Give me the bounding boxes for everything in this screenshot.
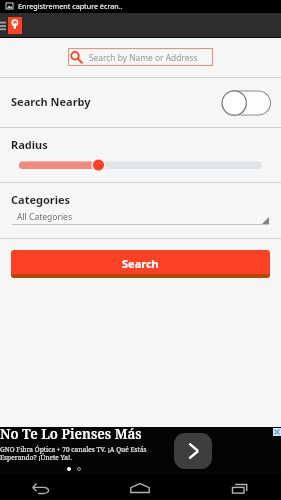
button[interactable]: Close advertisement — [273, 428, 281, 436]
staticText: Esperando? ¡Únete Ya!. — [0, 453, 72, 462]
staticText: Search — [122, 256, 159, 271]
staticText: Search by Name or Address — [89, 52, 198, 63]
staticText: GNO Fibra Óptica + 70 canales TV. ¡A Qué… — [0, 445, 147, 454]
staticText: No Te Lo Pienses Más — [0, 425, 142, 443]
button[interactable]: Back — [26, 477, 56, 499]
button[interactable]: All Categories — [12, 209, 269, 225]
button[interactable]: Search — [11, 250, 270, 278]
staticText: Categories — [11, 192, 71, 207]
button[interactable]: Search Nearby toggle — [220, 88, 274, 118]
staticText: Search Nearby — [11, 94, 91, 109]
button[interactable]: Home — [125, 477, 155, 499]
button[interactable]: App logo — [8, 17, 22, 34]
button[interactable]: Recents — [225, 477, 255, 499]
button[interactable]: Search by Name or Address — [68, 48, 213, 66]
staticText: Radius — [11, 137, 48, 152]
staticText: All Categories — [17, 211, 72, 223]
button[interactable]: Menu — [0, 17, 8, 33]
button[interactable]: Open advertisement — [174, 433, 212, 469]
staticText: Enregistrement capture écran.. — [18, 1, 123, 11]
button[interactable]: Radius slider — [11, 152, 281, 178]
